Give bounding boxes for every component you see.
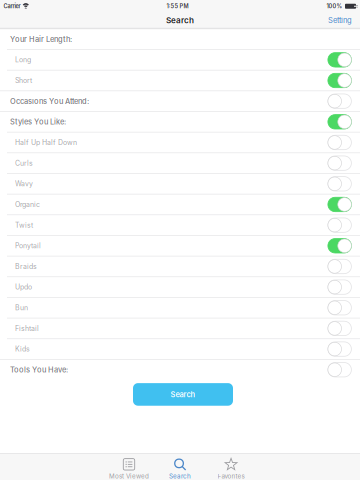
- staticText: Long: [15, 56, 31, 64]
- button[interactable]: Search: [154, 454, 205, 480]
- staticText: Ponytail: [15, 242, 41, 250]
- staticText: Fishtail: [15, 324, 39, 333]
- staticText: Occasions You Attend:: [10, 97, 89, 106]
- button[interactable]: Setting: [328, 13, 360, 28]
- staticText: Bun: [15, 304, 28, 312]
- button[interactable]: Updo: [0, 276, 360, 297]
- staticText: Short: [15, 76, 32, 85]
- button[interactable]: Ponytail: [0, 235, 360, 256]
- button[interactable]: Kids: [0, 338, 360, 359]
- button[interactable]: Tools You Have:: [0, 359, 360, 380]
- button[interactable]: Wavy: [0, 173, 360, 194]
- button[interactable]: Organic: [0, 194, 360, 214]
- staticText: Twist: [15, 221, 33, 229]
- staticText: 100%: [326, 3, 342, 10]
- staticText: Favorites: [217, 472, 244, 480]
- button[interactable]: Bun: [0, 297, 360, 318]
- button[interactable]: Favorites: [205, 454, 256, 480]
- staticText: Search: [170, 390, 195, 399]
- button[interactable]: Your Hair Length:: [0, 28, 360, 49]
- staticText: Most Viewed: [109, 472, 149, 480]
- staticText: Styles You Like:: [10, 117, 66, 126]
- staticText: Updo: [15, 283, 32, 291]
- staticText: Wavy: [15, 180, 33, 188]
- button[interactable]: Curls: [0, 152, 360, 173]
- staticText: Carrier: [3, 3, 20, 10]
- staticText: Search: [169, 472, 191, 480]
- staticText: Half Up Half Down: [15, 138, 77, 147]
- button[interactable]: Long: [0, 49, 360, 70]
- button[interactable]: Braids: [0, 256, 360, 276]
- button[interactable]: Half Up Half Down: [0, 132, 360, 152]
- button[interactable]: Search: [133, 383, 233, 406]
- staticText: Organic: [15, 200, 40, 209]
- button[interactable]: Fishtail: [0, 318, 360, 338]
- button[interactable]: Most Viewed: [103, 454, 154, 480]
- button[interactable]: Short: [0, 70, 360, 90]
- staticText: 1:55 PM: [166, 3, 188, 10]
- staticText: Your Hair Length:: [10, 35, 72, 44]
- button[interactable]: Occasions You Attend:: [0, 90, 360, 111]
- staticText: Setting: [328, 16, 352, 25]
- staticText: Search: [166, 15, 194, 25]
- button[interactable]: Twist: [0, 214, 360, 235]
- staticText: Curls: [15, 159, 33, 167]
- button[interactable]: Styles You Like:: [0, 111, 360, 132]
- staticText: Kids: [15, 345, 30, 353]
- staticText: Braids: [15, 262, 37, 271]
- staticText: Tools You Have:: [10, 365, 68, 374]
